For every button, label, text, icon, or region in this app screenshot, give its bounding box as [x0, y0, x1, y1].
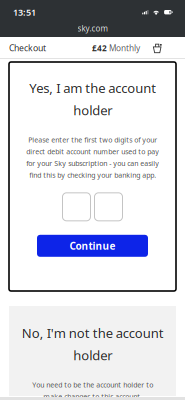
staticText: Please enter the first two digits of you…	[26, 135, 159, 180]
staticText: Checkout	[9, 42, 46, 54]
button[interactable]: Basket	[153, 43, 162, 53]
staticText: No, I'm not the account holder	[21, 324, 163, 364]
staticText: 13:51	[13, 6, 36, 18]
staticText: £42	[92, 42, 107, 54]
staticText: Monthly	[109, 42, 140, 54]
staticText: You need to be the account holder to mak…	[32, 380, 153, 400]
staticText: Continue	[69, 239, 115, 253]
button[interactable]: Checkout	[9, 42, 46, 54]
staticText: Yes, I am the account holder	[29, 79, 156, 119]
staticText: sky.com	[77, 23, 107, 34]
button[interactable]: Continue	[37, 235, 148, 257]
